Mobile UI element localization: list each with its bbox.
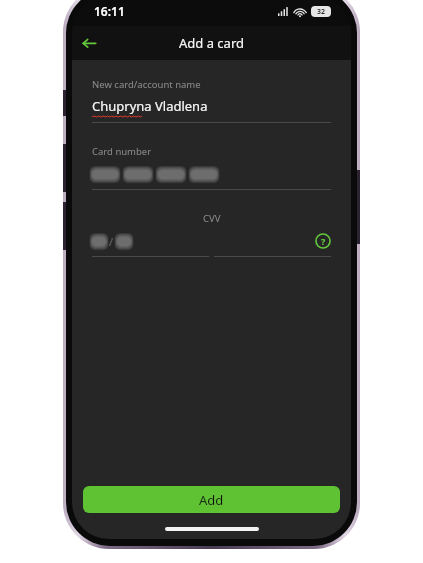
staticText: 32 xyxy=(317,7,326,17)
button[interactable]: New card/account name xyxy=(92,78,331,123)
button[interactable]: What is CVV? xyxy=(315,233,331,249)
button[interactable]: Add xyxy=(83,486,340,513)
staticText: Add xyxy=(199,491,224,509)
staticText: New card/account name xyxy=(92,78,201,91)
staticText: / xyxy=(109,234,114,249)
staticText: Add a card xyxy=(179,34,244,52)
button[interactable]: Back xyxy=(72,26,106,60)
staticText: ? xyxy=(321,235,326,247)
button[interactable]: Card number xyxy=(92,145,331,190)
staticText: CVV xyxy=(203,212,221,225)
button[interactable]: What is CVV? xyxy=(211,231,331,251)
staticText: Card number xyxy=(92,145,152,158)
staticText: 16:11 xyxy=(94,3,125,19)
button[interactable]: / xyxy=(92,234,211,249)
staticText: Chupryna Vladlena xyxy=(92,97,208,115)
